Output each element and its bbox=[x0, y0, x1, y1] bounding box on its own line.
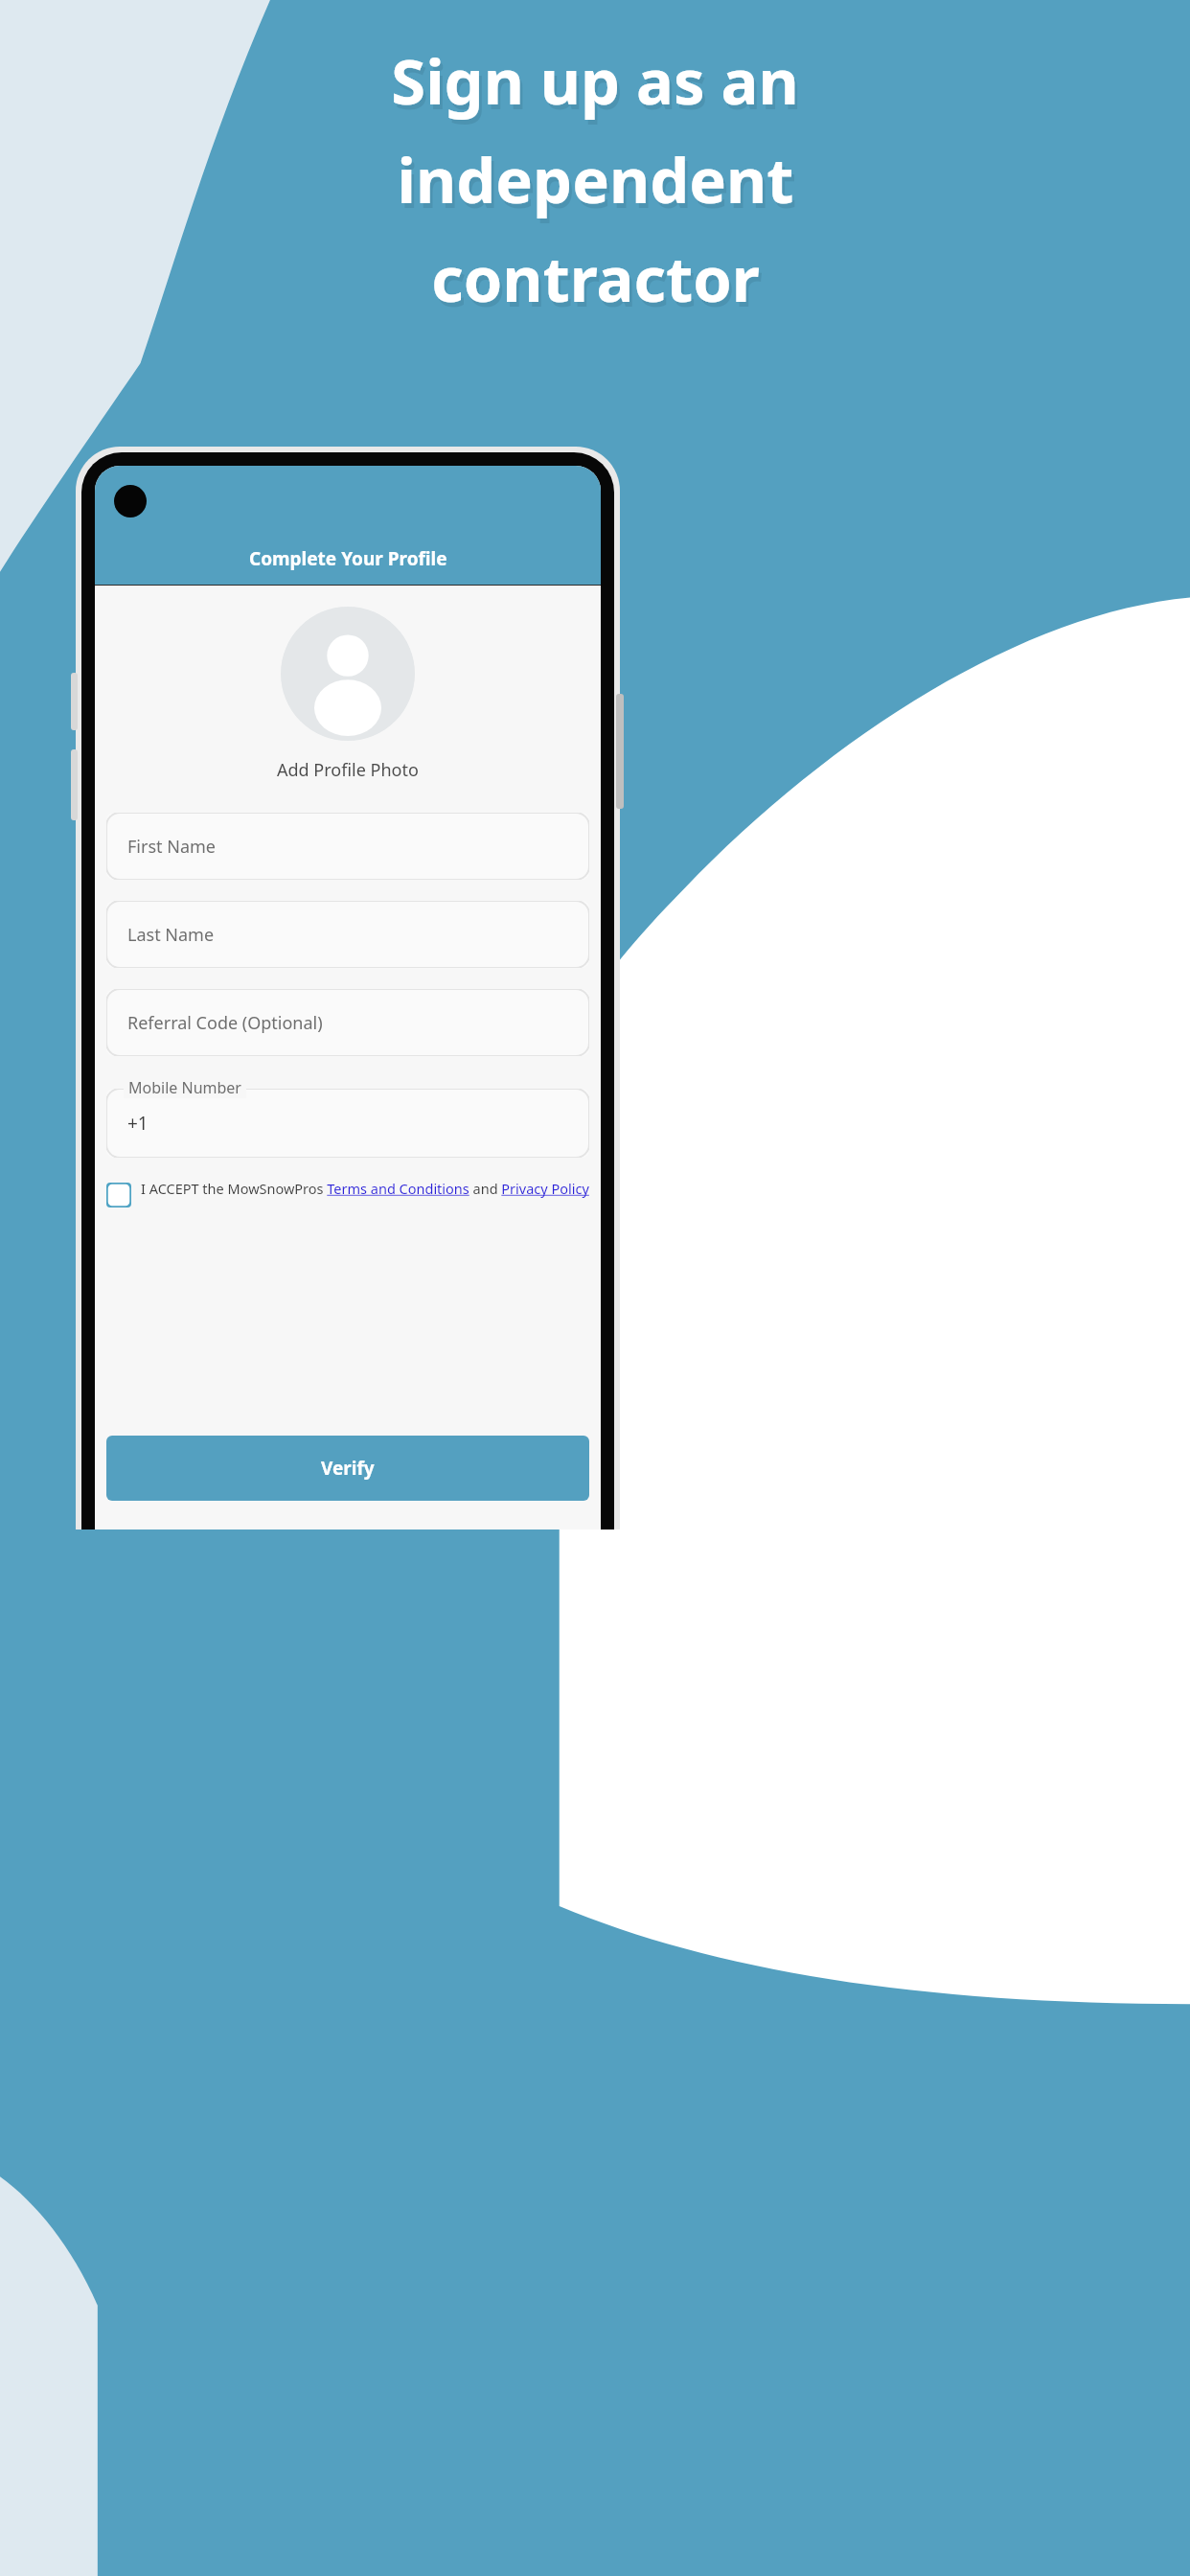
staticText: Sign up as an bbox=[394, 43, 802, 128]
button[interactable]: +1 bbox=[106, 1077, 589, 1158]
staticText: independent bbox=[397, 137, 794, 222]
staticText: Verify bbox=[321, 1456, 375, 1481]
button[interactable]: First Name bbox=[106, 813, 589, 880]
button[interactable]: Add Profile Photo bbox=[281, 607, 415, 741]
staticText: contractor bbox=[431, 236, 760, 321]
staticText: Add Profile Photo bbox=[277, 758, 419, 782]
staticText: contractor bbox=[434, 241, 763, 326]
staticText: independent bbox=[400, 142, 797, 227]
button[interactable]: Verify bbox=[106, 1436, 589, 1501]
button[interactable]: Last Name bbox=[106, 901, 589, 968]
staticText: Last Name bbox=[127, 923, 215, 947]
staticText: +1 bbox=[127, 1111, 149, 1136]
staticText: Complete Your Profile bbox=[249, 546, 447, 571]
staticText: Sign up as an bbox=[391, 38, 799, 124]
staticText: Mobile Number bbox=[128, 1077, 241, 1098]
staticText: First Name bbox=[127, 835, 216, 859]
staticText: I ACCEPT the MowSnowPros Terms and Condi… bbox=[141, 1179, 589, 1198]
button[interactable]: Referral Code (Optional) bbox=[106, 989, 589, 1056]
staticText: Referral Code (Optional) bbox=[127, 1011, 323, 1035]
button[interactable]: I ACCEPT the MowSnowPros Terms and Condi… bbox=[106, 1179, 589, 1207]
